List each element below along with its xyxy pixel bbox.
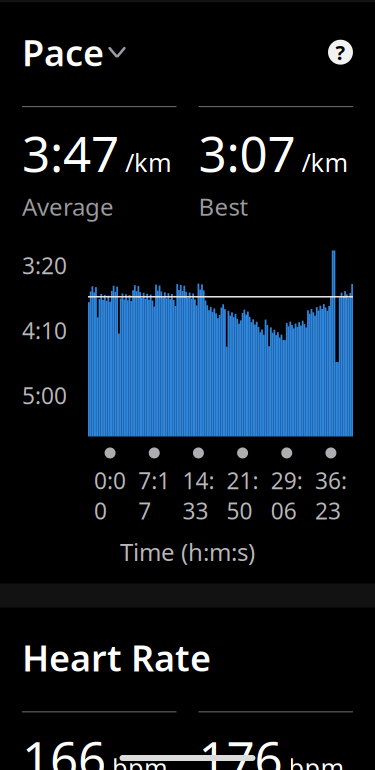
button[interactable]: Help (328, 40, 353, 65)
staticText: 4:10 (22, 315, 67, 345)
staticText: bpm (112, 751, 168, 770)
staticText: ? (335, 39, 345, 65)
staticText: bpm (288, 751, 344, 770)
button[interactable]: Pace (22, 28, 126, 76)
staticText: /km (301, 145, 348, 179)
staticText: 29:06 (271, 465, 303, 526)
staticText: 14:33 (182, 465, 214, 526)
staticText: 3:07 (198, 120, 295, 186)
staticText: 5:00 (22, 380, 67, 410)
staticText: 3:47 (22, 120, 119, 186)
staticText: Best (198, 191, 248, 222)
staticText: 3:20 (22, 250, 67, 281)
staticText: /km (125, 145, 172, 179)
staticText: 176 (198, 725, 282, 770)
staticText: 36:23 (315, 465, 347, 526)
staticText: Average (22, 191, 114, 222)
staticText: 7:17 (138, 465, 170, 526)
staticText: Heart Rate (22, 633, 211, 681)
staticText: 0:00 (94, 465, 126, 526)
staticText: 166 (22, 725, 106, 770)
staticText: Pace (22, 28, 104, 76)
staticText: Time (h:m:s) (120, 536, 255, 568)
staticText: 21:50 (227, 465, 259, 526)
